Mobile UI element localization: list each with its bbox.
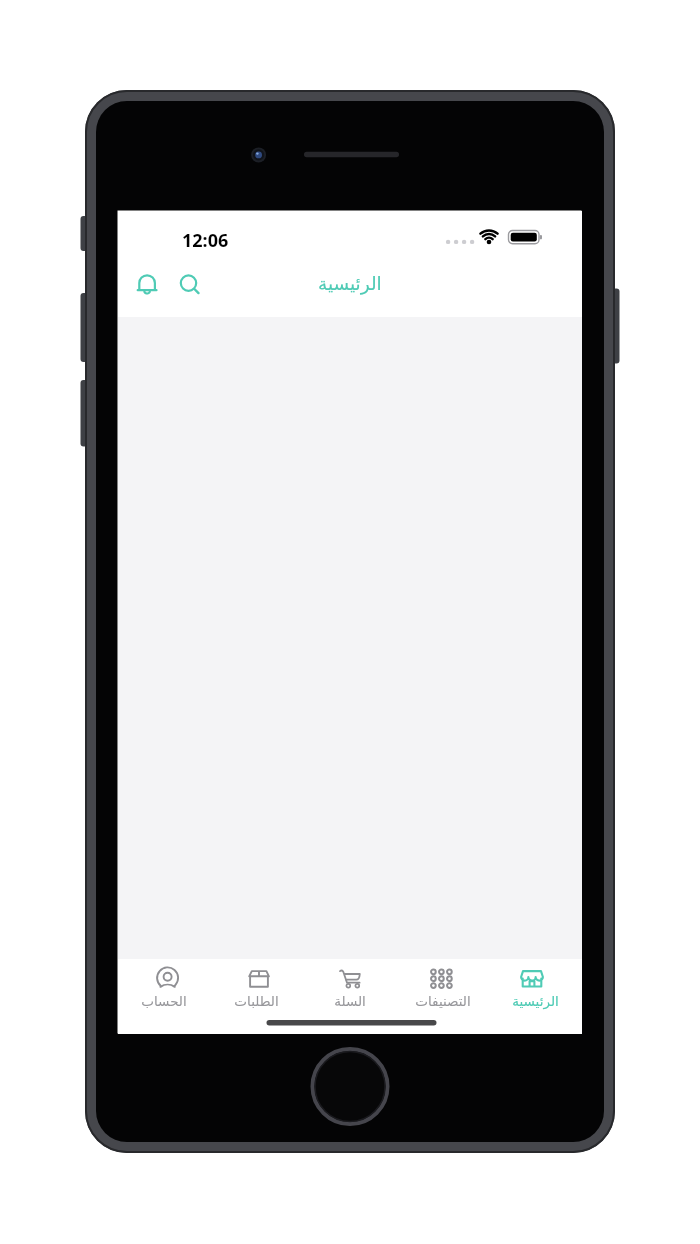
button[interactable]: الحساب <box>118 959 210 1035</box>
button[interactable] <box>172 268 205 301</box>
button[interactable] <box>131 269 164 302</box>
button[interactable]: الطلبات <box>210 959 303 1035</box>
staticText: الحساب <box>141 993 187 1009</box>
staticText: الرئيسية <box>318 273 382 295</box>
staticText: السلة <box>334 993 366 1009</box>
staticText: 12:06 <box>182 228 229 249</box>
staticText: الطلبات <box>234 993 279 1009</box>
button[interactable]: التصنيفات <box>396 959 489 1035</box>
button[interactable]: السلة <box>303 959 396 1035</box>
button[interactable]: الرئيسية <box>489 959 582 1035</box>
staticText: الرئيسية <box>512 993 559 1009</box>
staticText: التصنيفات <box>415 993 471 1009</box>
